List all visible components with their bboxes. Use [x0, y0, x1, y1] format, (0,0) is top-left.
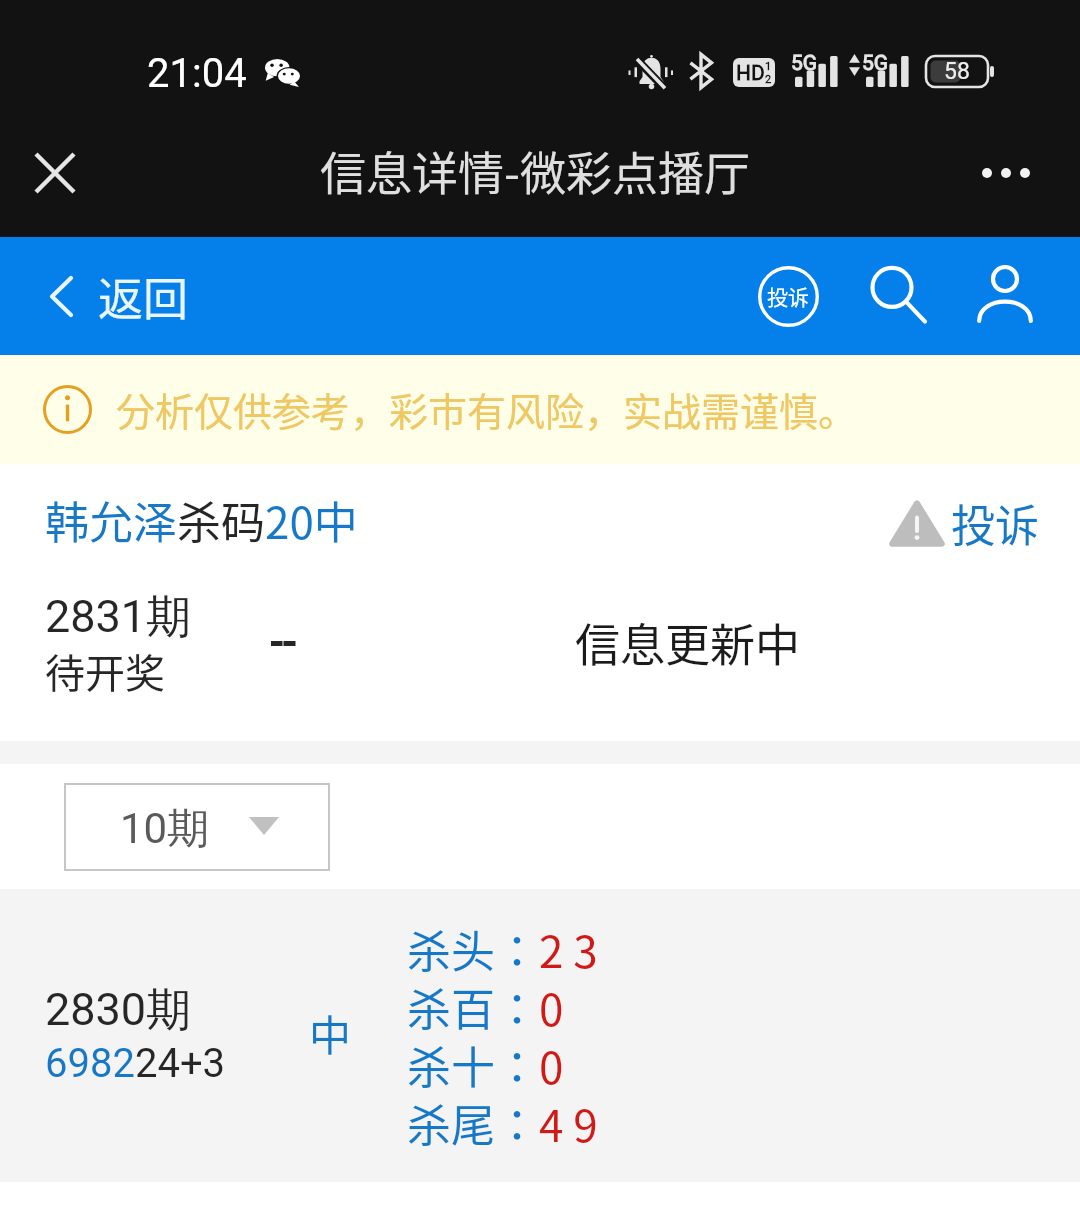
button[interactable]: 10期 — [64, 783, 330, 871]
staticText: 投诉 — [767, 281, 809, 311]
staticText: 698224+3 — [45, 1040, 226, 1087]
staticText: 返回 — [98, 264, 189, 329]
staticText: 投诉 — [951, 491, 1039, 555]
staticText: 21:04 — [147, 50, 247, 97]
button[interactable]: Close — [17, 135, 92, 210]
staticText: 分析仅供参考，彩市有风险，实战需谨慎。 — [116, 381, 858, 437]
staticText: 杀头：2 3 — [407, 917, 598, 975]
button[interactable]: Profile — [968, 257, 1042, 331]
button[interactable]: 投诉 — [888, 491, 1039, 555]
staticText: 中 — [309, 1002, 352, 1063]
staticText: 杀百：0 — [407, 975, 564, 1033]
button[interactable]: 投诉 — [751, 259, 825, 333]
staticText: 待开奖 — [45, 642, 165, 700]
staticText: 10期 — [120, 803, 210, 856]
button[interactable]: 韩允泽杀码20中 — [45, 488, 358, 552]
staticText: 2 — [765, 73, 772, 86]
staticText: 2830期 — [45, 982, 192, 1039]
staticText: 信息更新中 — [575, 610, 801, 675]
staticText: 杀十：0 — [407, 1033, 564, 1091]
staticText: HD — [736, 61, 765, 86]
staticText: 杀尾：4 9 — [407, 1091, 598, 1149]
staticText: 5G — [791, 51, 818, 76]
staticText: 58 — [944, 58, 970, 85]
button[interactable]: 返回 — [51, 264, 189, 329]
staticText: 5G — [862, 51, 889, 76]
staticText: 2831期 — [45, 589, 192, 646]
button[interactable]: More options — [968, 135, 1043, 210]
staticText: 信息详情-微彩点播厅 — [320, 137, 750, 204]
staticText: 1 — [765, 60, 772, 73]
button[interactable]: Search — [861, 257, 935, 331]
